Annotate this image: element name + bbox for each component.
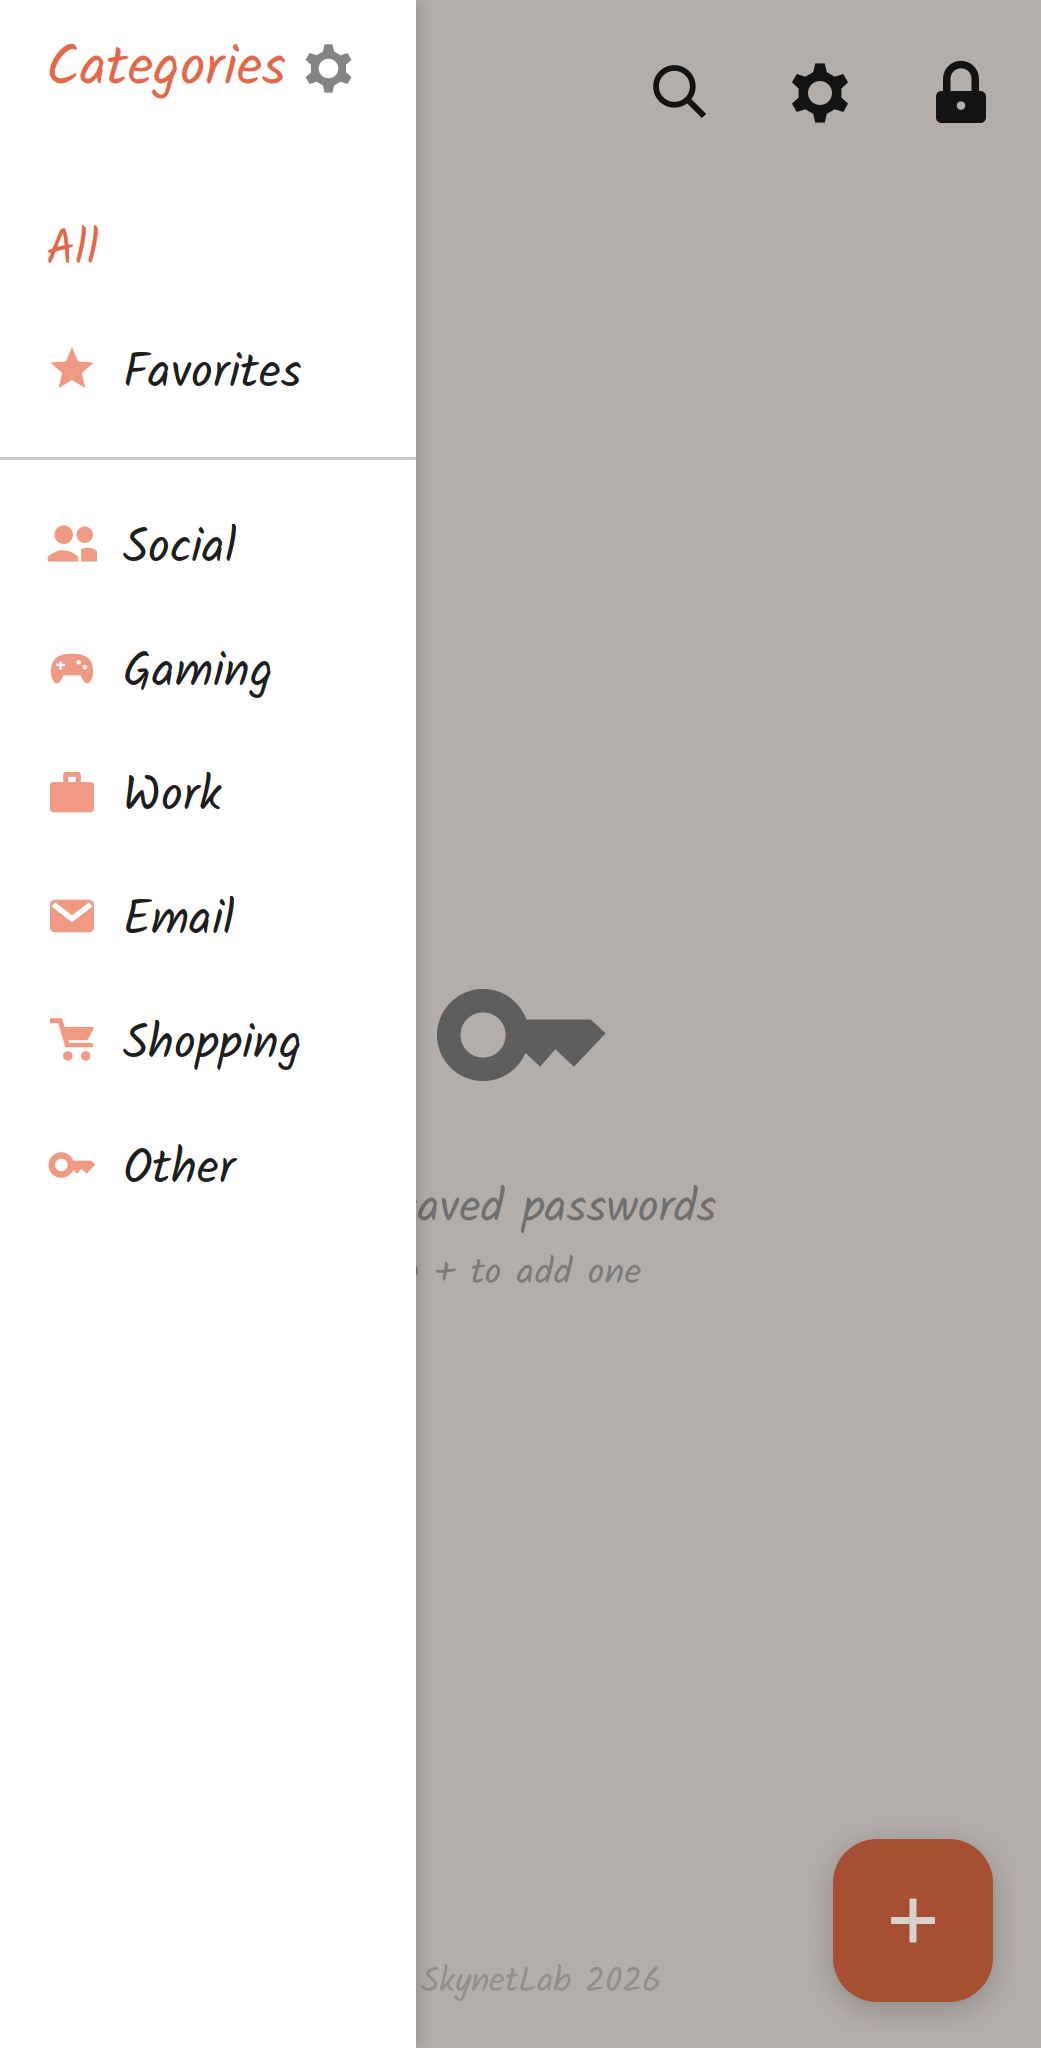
button[interactable]: Gaming — [0, 613, 416, 723]
staticText: Email — [123, 883, 235, 959]
button[interactable]: Social — [0, 489, 416, 599]
staticText: Work — [123, 759, 222, 835]
button[interactable]: Favorites — [0, 314, 416, 424]
staticText: Social — [123, 511, 237, 587]
button[interactable]: Add password — [833, 1839, 993, 2002]
button[interactable]: Drawer settings — [304, 44, 353, 93]
button[interactable]: Work — [0, 737, 416, 847]
button[interactable]: Settings — [790, 63, 850, 123]
staticText: Shopping — [123, 1007, 302, 1083]
staticText: Gaming — [123, 635, 273, 711]
button[interactable]: Email — [0, 861, 416, 971]
staticText: Tap + to add one — [362, 1244, 641, 1303]
staticText: Favorites — [123, 336, 301, 412]
staticText: All — [46, 213, 99, 289]
button[interactable]: Search — [656, 68, 706, 118]
staticText: Other — [123, 1132, 235, 1208]
staticText: Categories — [46, 25, 286, 114]
button[interactable]: Lock — [936, 62, 986, 123]
staticText: No saved passwords — [325, 1172, 716, 1246]
button[interactable]: Other — [0, 1110, 416, 1220]
button[interactable]: All — [0, 200, 416, 310]
button[interactable]: Shopping — [0, 985, 416, 1095]
staticText: SkynetLab 2026 — [421, 1955, 661, 2010]
